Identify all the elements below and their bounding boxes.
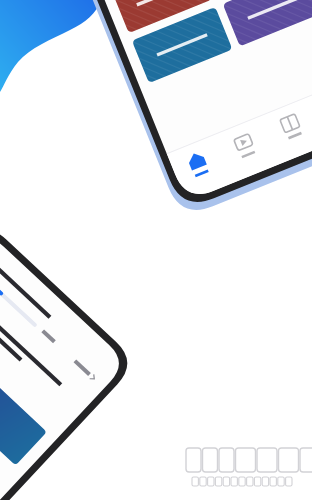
button[interactable]: Top phone app preview bbox=[0, 0, 120, 60]
button[interactable]: Top phone app preview bbox=[0, 0, 312, 500]
